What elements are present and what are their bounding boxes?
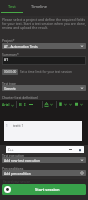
staticText: Test type [2, 81, 16, 85]
staticText: 1 [6, 124, 8, 128]
staticText: Add precondition [4, 171, 31, 175]
staticText: Generic [4, 86, 16, 90]
button[interactable]: #1 [2, 56, 86, 65]
staticText: Charter (test definition) [2, 95, 39, 99]
staticText: 00:00:00 [4, 70, 17, 74]
staticText: Test execution [2, 153, 25, 157]
staticText: Add new test execution [4, 158, 40, 162]
staticText: Please select a project and define the r… [2, 17, 86, 30]
staticText: #1 [4, 57, 9, 61]
button[interactable]: Timeline [24, 0, 54, 16]
button[interactable]: Add new test execution [2, 157, 86, 163]
button[interactable]: Test [0, 0, 24, 16]
staticText: Timeline [31, 4, 48, 9]
staticText: Start session [35, 187, 60, 192]
staticText: Test [8, 4, 16, 9]
staticText: Arial [2, 103, 10, 107]
button[interactable]: Highlight colour [58, 102, 63, 107]
button[interactable]: I [24, 102, 26, 108]
staticText: Set a time limit for your test session [20, 70, 72, 74]
staticText: C++ [8, 148, 14, 152]
button[interactable]: Start session [2, 184, 86, 195]
button[interactable]: Generic [2, 85, 86, 91]
button[interactable]: Text colour [44, 102, 49, 107]
button[interactable]: Add precondition [2, 170, 86, 176]
staticText: Preconditions [2, 166, 24, 170]
button[interactable]: C++ [6, 146, 84, 153]
staticText: Record your session [3, 180, 31, 184]
staticText: testtt 1 [13, 124, 24, 128]
button[interactable]: 00:00:00 [2, 69, 18, 75]
staticText: AT - Automation Tests [4, 44, 38, 48]
staticText: Summary* [2, 52, 19, 56]
button[interactable]: AT - Automation Tests [2, 43, 86, 49]
other: Delete [78, 148, 82, 152]
button[interactable]: Arial [2, 102, 14, 108]
staticText: Project* [2, 38, 15, 42]
button[interactable]: B [19, 102, 22, 108]
button[interactable]: More formatting [74, 102, 79, 107]
